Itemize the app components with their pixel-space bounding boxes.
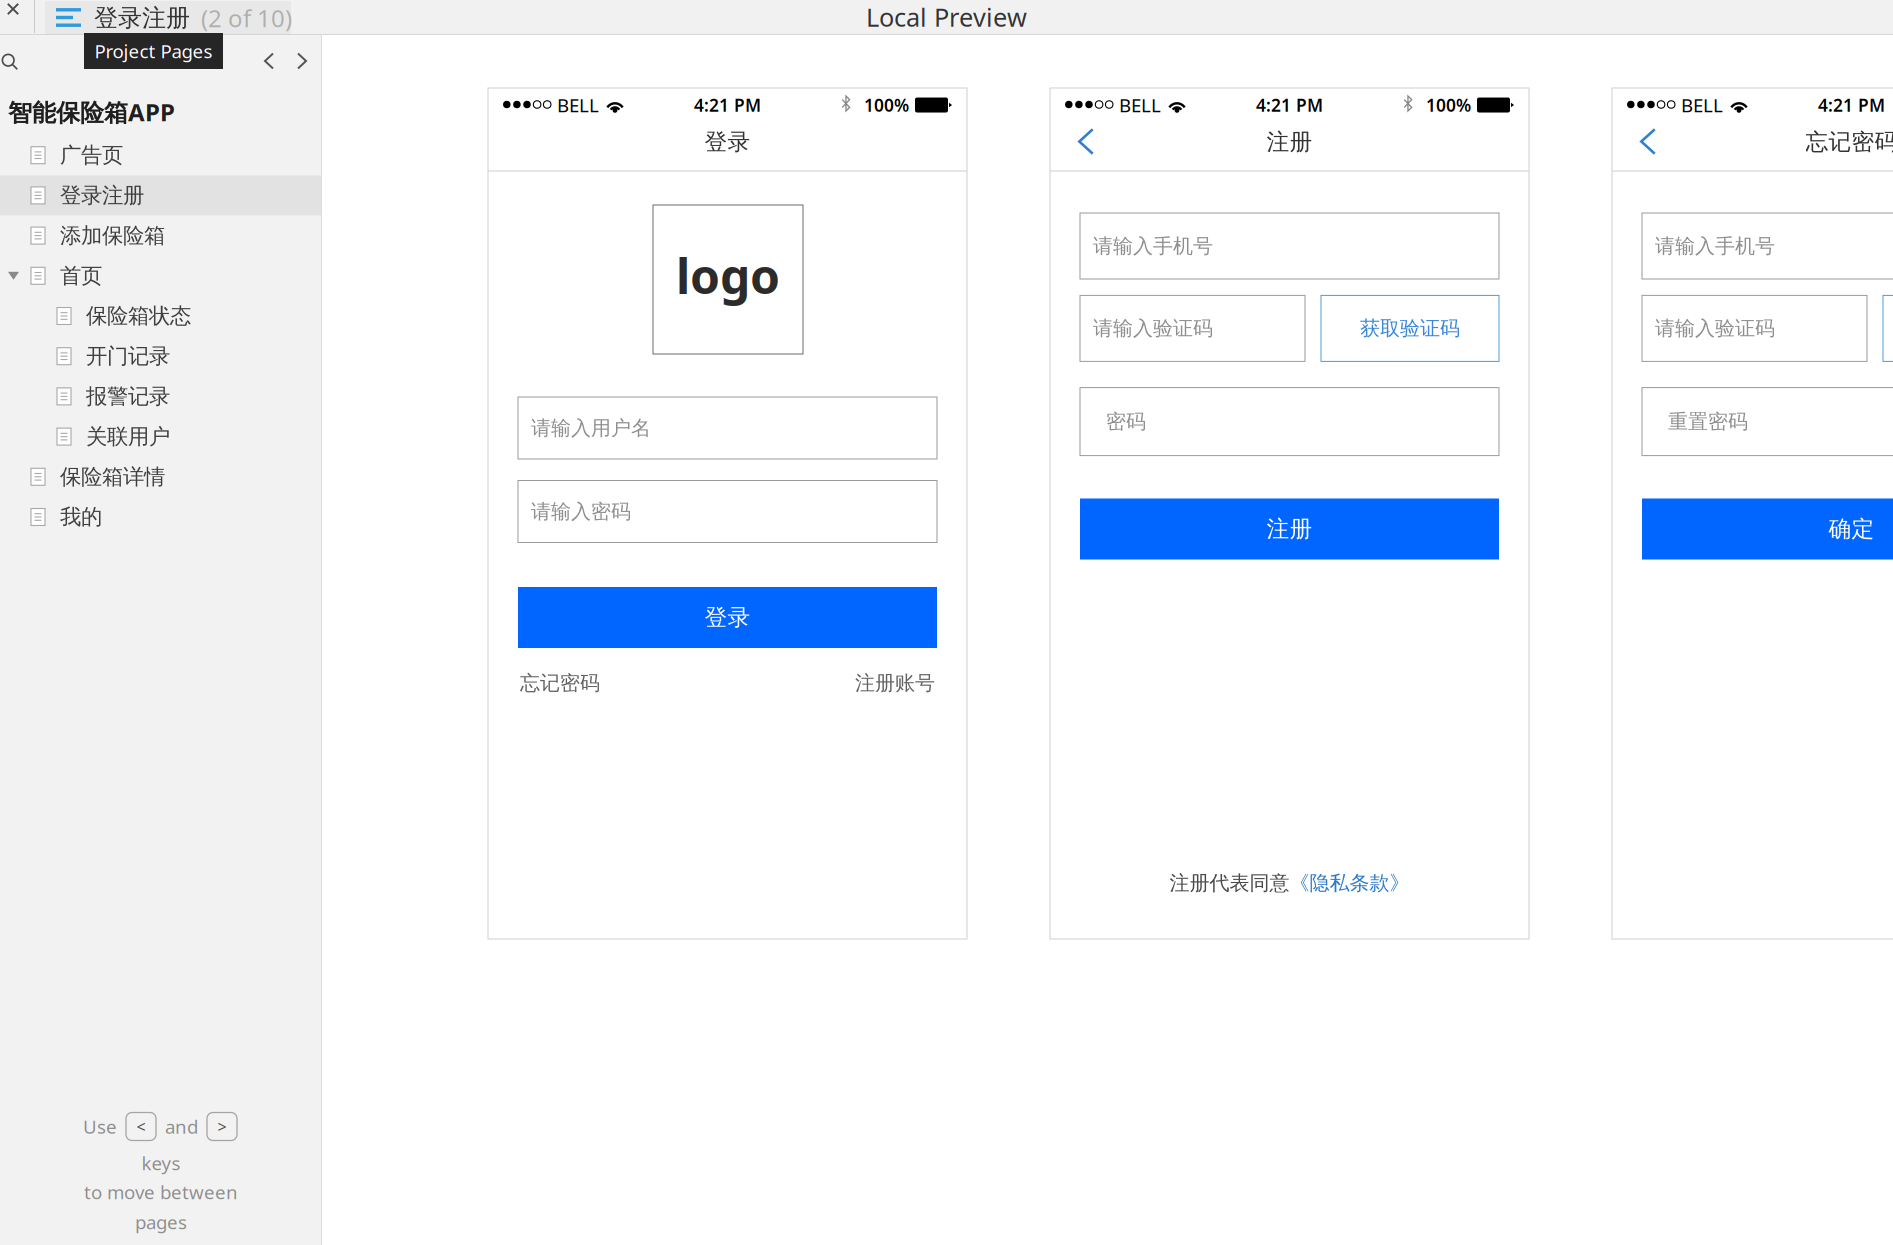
staticText: 请输入手机号 [1655, 234, 1775, 258]
staticText: 注册代表同意 [1169, 871, 1289, 895]
staticText: 请输入验证码 [1655, 316, 1775, 341]
button[interactable]: 我的 [0, 497, 322, 537]
button[interactable]: 请输入验证码 [1080, 295, 1305, 361]
staticText: > [217, 1116, 226, 1137]
button[interactable]: Next page [288, 46, 316, 76]
staticText: 4:21 PM [694, 93, 761, 116]
staticText: 4:21 PM [1818, 93, 1885, 116]
button[interactable]: 登录注册 [45, 1, 291, 34]
button[interactable]: Back [1078, 128, 1094, 155]
button[interactable]: 登录注册 [0, 175, 322, 216]
button[interactable]: 密码 [1080, 388, 1499, 456]
button[interactable]: 获取验证码 [1883, 295, 1893, 361]
button[interactable]: Back [1640, 128, 1656, 155]
staticText: 《隐私条款》 [1289, 871, 1409, 895]
staticText: (2 of 10) [201, 2, 292, 34]
button[interactable]: 保险箱状态 [0, 296, 322, 336]
button[interactable]: 首页 [0, 256, 322, 296]
staticText: 请输入用户名 [531, 416, 651, 440]
button[interactable]: 关联用户 [0, 417, 322, 457]
staticText: 首页 [60, 263, 102, 289]
button[interactable]: 请输入手机号 [1642, 213, 1893, 279]
staticText: 4:21 PM [1256, 93, 1323, 116]
staticText: Local Preview [866, 0, 1027, 34]
staticText: 请输入密码 [531, 499, 631, 524]
staticText: 登录 [704, 604, 750, 631]
staticText: 密码 [1106, 409, 1146, 434]
button[interactable]: Previous page [255, 46, 283, 76]
staticText: 确定 [1828, 515, 1874, 543]
button[interactable]: 注册 [1080, 498, 1499, 559]
button[interactable]: 保险箱详情 [0, 457, 322, 497]
button[interactable]: 添加保险箱 [0, 216, 322, 256]
staticText: 关联用户 [86, 423, 170, 450]
staticText: 登录注册 [60, 182, 144, 208]
staticText: 请输入验证码 [1093, 316, 1213, 341]
staticText: 注册 [1266, 515, 1312, 543]
staticText: and [165, 1114, 198, 1139]
staticText: BELL [557, 93, 599, 117]
staticText: Use [83, 1114, 117, 1139]
button[interactable]: 报警记录 [0, 376, 322, 417]
staticText: 报警记录 [86, 383, 170, 409]
staticText: < [136, 1116, 145, 1137]
button[interactable]: 开门记录 [0, 336, 322, 376]
staticText: 登录注册 [94, 3, 190, 33]
staticText: Project Pages [94, 39, 212, 63]
button[interactable]: 确定 [1642, 498, 1893, 559]
button[interactable]: 登录 [518, 587, 937, 648]
button[interactable]: 获取验证码 [1321, 295, 1499, 361]
staticText: pages [135, 1210, 187, 1234]
button[interactable]: 请输入密码 [518, 480, 937, 542]
staticText: 100% [864, 93, 909, 116]
staticText: 重置密码 [1668, 409, 1748, 434]
button[interactable]: 请输入用户名 [518, 397, 937, 459]
staticText: 智能保险箱APP [8, 96, 175, 128]
staticText: 我的 [60, 504, 102, 530]
button[interactable]: 《隐私条款》 [1289, 871, 1409, 895]
staticText: 请输入手机号 [1093, 234, 1213, 258]
staticText: 注册账号 [855, 671, 935, 695]
staticText: BELL [1119, 93, 1161, 117]
button[interactable]: 请输入验证码 [1642, 295, 1867, 361]
staticText: 注册 [1266, 128, 1312, 156]
staticText: 登录 [704, 128, 750, 156]
staticText: 开门记录 [86, 343, 170, 369]
staticText: 获取验证码 [1360, 316, 1460, 341]
staticText: 添加保险箱 [60, 222, 165, 249]
button[interactable]: 注册账号 [855, 664, 935, 702]
button[interactable]: 重置密码 [1642, 388, 1893, 456]
staticText: 保险箱状态 [86, 303, 191, 329]
button[interactable]: 忘记密码 [520, 664, 600, 702]
staticText: 保险箱详情 [60, 464, 165, 490]
staticText: 忘记密码 [520, 671, 600, 695]
staticText: to move between [84, 1180, 238, 1204]
staticText: BELL [1681, 93, 1723, 117]
button[interactable]: 请输入手机号 [1080, 213, 1499, 279]
staticText: 忘记密码 [1805, 128, 1893, 156]
staticText: keys [141, 1151, 180, 1175]
button[interactable]: 广告页 [0, 135, 322, 175]
button[interactable]: Close [1, 0, 25, 20]
staticText: 广告页 [60, 142, 123, 168]
staticText: logo [676, 244, 780, 307]
button[interactable]: Search [0, 52, 20, 72]
staticText: 100% [1426, 93, 1471, 116]
